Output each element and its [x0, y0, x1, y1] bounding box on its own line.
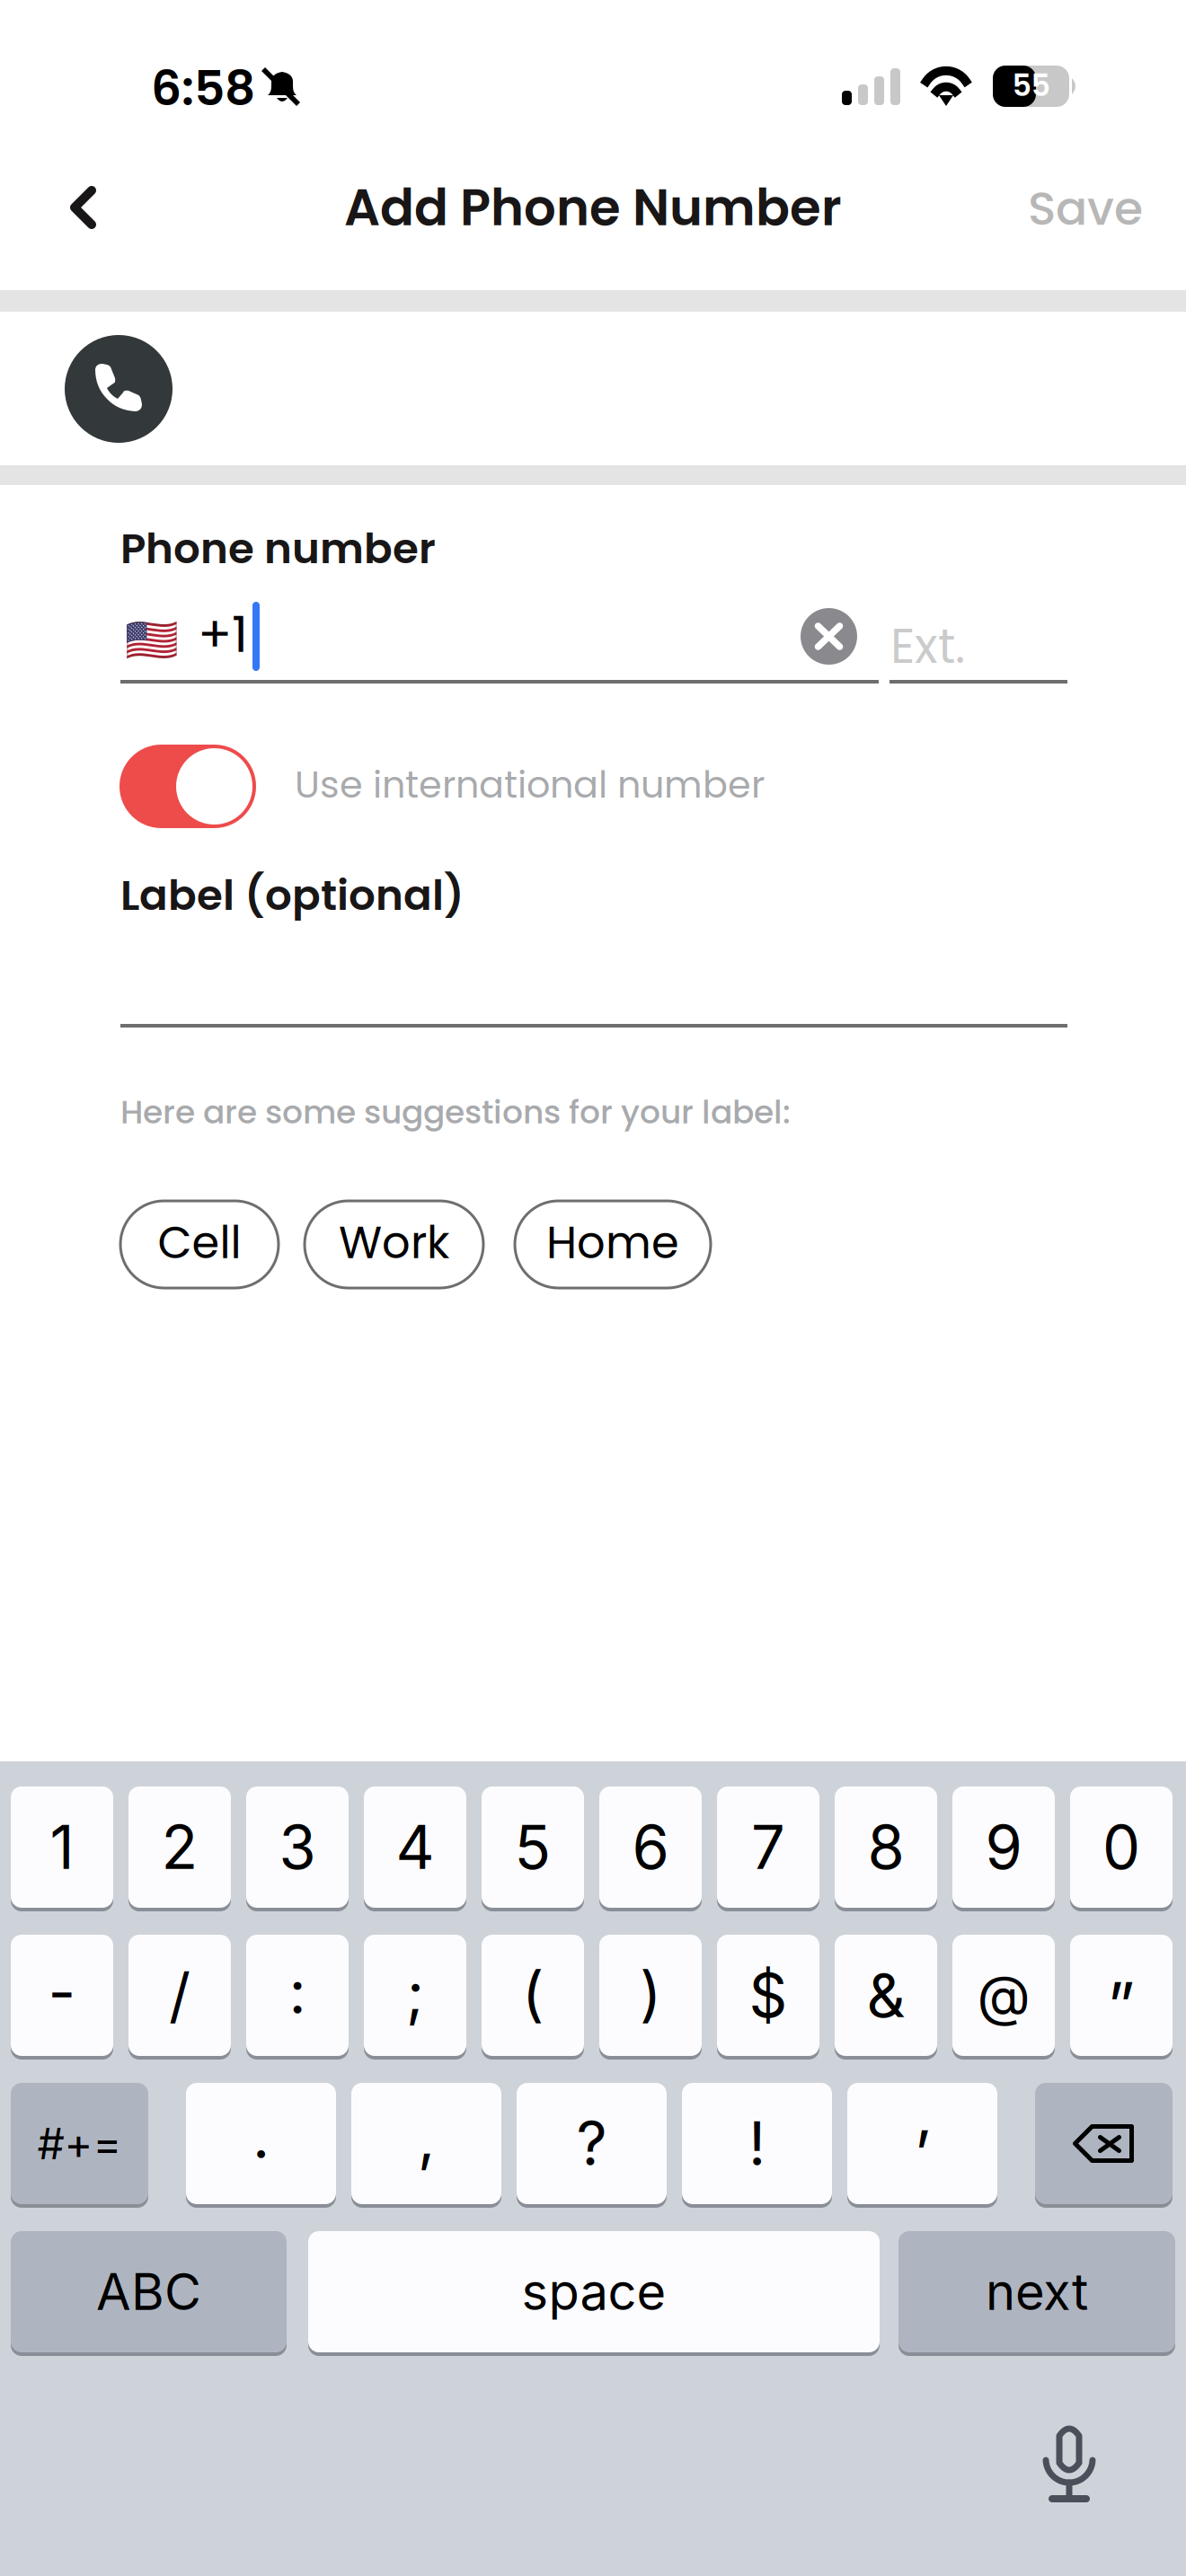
staticText: 55: [1012, 64, 1050, 106]
staticText: Ext.: [890, 613, 965, 680]
staticText: ’: [914, 2115, 930, 2190]
staticText: ;: [406, 1957, 424, 2030]
staticText: $: [749, 1959, 788, 2032]
button[interactable]: Clear phone number: [801, 608, 857, 665]
staticText: space: [522, 2261, 666, 2322]
staticText: ABC: [96, 2261, 201, 2322]
staticText: 6: [632, 1811, 669, 1883]
button[interactable]: -: [11, 1933, 113, 2058]
staticText: .: [252, 2100, 270, 2173]
button[interactable]: .: [186, 2081, 336, 2206]
button[interactable]: @: [952, 1933, 1055, 2058]
staticText: 9: [985, 1811, 1022, 1883]
staticText: /: [169, 1959, 190, 2032]
staticText: 🇺🇸: [125, 614, 179, 665]
staticText: 8: [867, 1811, 904, 1883]
staticText: 3: [279, 1811, 316, 1883]
staticText: 2: [161, 1811, 198, 1883]
button[interactable]: #+=: [11, 2081, 148, 2206]
button[interactable]: ): [599, 1933, 702, 2058]
staticText: :: [289, 1956, 306, 2028]
staticText: 6:58: [151, 55, 255, 122]
button[interactable]: Cell: [120, 1201, 279, 1288]
button[interactable]: !: [682, 2081, 832, 2206]
button[interactable]: Back: [34, 159, 133, 258]
button[interactable]: Use international number: [119, 745, 1066, 828]
staticText: &: [867, 1959, 905, 2032]
button[interactable]: ’: [847, 2081, 997, 2206]
staticText: +1: [198, 599, 248, 670]
button[interactable]: 0: [1070, 1785, 1173, 1910]
button[interactable]: :: [246, 1933, 349, 2058]
button[interactable]: (: [482, 1933, 584, 2058]
staticText: Phone number: [120, 519, 436, 578]
staticText: #+=: [37, 2117, 122, 2170]
button[interactable]: ABC: [11, 2229, 287, 2354]
button[interactable]: 8: [835, 1785, 937, 1910]
button[interactable]: 6: [599, 1785, 702, 1910]
staticText: Use international number: [295, 759, 765, 811]
staticText: next: [986, 2261, 1088, 2322]
button[interactable]: space: [308, 2229, 880, 2354]
button[interactable]: Home: [515, 1201, 711, 1288]
button[interactable]: ,: [351, 2081, 501, 2206]
staticText: 4: [396, 1811, 434, 1883]
button[interactable]: next: [898, 2229, 1175, 2354]
button[interactable]: Save: [1005, 159, 1166, 258]
staticText: !: [748, 2107, 766, 2180]
staticText: Home: [546, 1212, 679, 1274]
staticText: Label (optional): [120, 866, 465, 925]
button[interactable]: Delete: [1035, 2081, 1173, 2206]
button[interactable]: 3: [246, 1785, 349, 1910]
staticText: ?: [576, 2107, 607, 2180]
staticText: -: [48, 1956, 76, 2028]
button[interactable]: Dictate: [1041, 2422, 1097, 2508]
button[interactable]: 2: [128, 1785, 231, 1910]
button[interactable]: 7: [717, 1785, 819, 1910]
button[interactable]: ”: [1070, 1933, 1173, 2058]
staticText: (: [522, 1957, 544, 2030]
staticText: ,: [418, 2102, 435, 2174]
button[interactable]: 9: [952, 1785, 1055, 1910]
button[interactable]: $: [717, 1933, 819, 2058]
button[interactable]: ;: [364, 1933, 466, 2058]
button[interactable]: 4: [364, 1785, 466, 1910]
staticText: ”: [1107, 1967, 1135, 2042]
staticText: @: [977, 1962, 1030, 2029]
staticText: Save: [1028, 176, 1143, 241]
staticText: ): [640, 1957, 661, 2030]
button[interactable]: 5: [482, 1785, 584, 1910]
staticText: 5: [514, 1811, 551, 1883]
button[interactable]: Work: [305, 1201, 483, 1288]
button[interactable]: /: [128, 1933, 231, 2058]
staticText: 0: [1102, 1811, 1140, 1883]
staticText: 1: [50, 1811, 74, 1883]
staticText: 7: [751, 1811, 785, 1883]
button[interactable]: ?: [517, 2081, 667, 2206]
button[interactable]: &: [835, 1933, 937, 2058]
staticText: Add Phone Number: [344, 172, 842, 243]
staticText: Cell: [158, 1212, 241, 1274]
staticText: Here are some suggestions for your label…: [120, 1090, 791, 1135]
staticText: Work: [339, 1212, 449, 1274]
button[interactable]: 1: [11, 1785, 113, 1910]
